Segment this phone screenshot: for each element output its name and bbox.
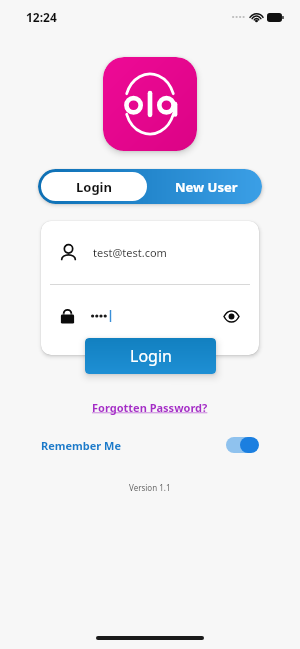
button[interactable]: New User [150,169,262,204]
button[interactable]: Show password [60,285,242,347]
staticText: Remember Me [41,438,122,453]
button[interactable]: Remember Me [41,437,259,453]
staticText: Login [130,345,172,367]
button[interactable]: Login [85,338,216,374]
staticText: Login [76,178,112,196]
button[interactable]: App logo [103,57,197,151]
button[interactable]: test@test.com [60,221,259,284]
button[interactable]: Login [41,172,147,201]
staticText: New User [175,178,238,196]
staticText: Version 1.1 [129,482,171,493]
staticText: test@test.com [93,245,167,260]
button[interactable]: Forgotten Password? [92,400,208,415]
staticText: 12:24 [26,9,57,25]
button[interactable]: Show password [220,305,242,327]
